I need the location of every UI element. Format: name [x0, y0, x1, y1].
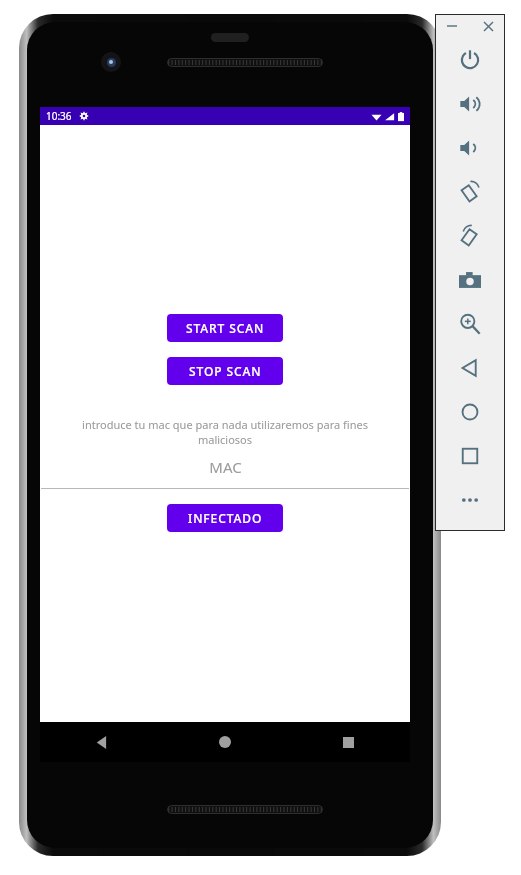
staticText: STOP SCAN	[189, 363, 262, 379]
button[interactable]: Zoom	[435, 302, 505, 346]
button[interactable]: Rotate left	[435, 170, 505, 214]
button[interactable]: MAC	[40, 457, 410, 489]
staticText: INFECTADO	[188, 510, 263, 526]
button[interactable]: Home	[435, 390, 505, 434]
staticText: START SCAN	[186, 320, 265, 336]
button[interactable]: Home	[206, 723, 244, 761]
button[interactable]: Overview	[435, 434, 505, 478]
button[interactable]: Volume up	[435, 82, 505, 126]
button[interactable]: Minimize	[441, 15, 463, 37]
staticText: 10:36	[46, 109, 72, 123]
button[interactable]: START SCAN	[167, 314, 283, 342]
staticText: introduce tu mac que para nada utilizare…	[68, 417, 382, 447]
button[interactable]: Back	[435, 346, 505, 390]
button[interactable]: Close	[477, 15, 499, 37]
button[interactable]: Power	[435, 38, 505, 82]
button[interactable]: Back	[83, 723, 121, 761]
button[interactable]: Volume down	[435, 126, 505, 170]
button[interactable]: INFECTADO	[167, 504, 283, 532]
button[interactable]: More	[435, 478, 505, 522]
button[interactable]: Recent apps	[329, 723, 367, 761]
button[interactable]: Take screenshot	[435, 258, 505, 302]
staticText: MAC	[209, 457, 242, 477]
button[interactable]: Rotate right	[435, 214, 505, 258]
button[interactable]: STOP SCAN	[167, 357, 283, 385]
